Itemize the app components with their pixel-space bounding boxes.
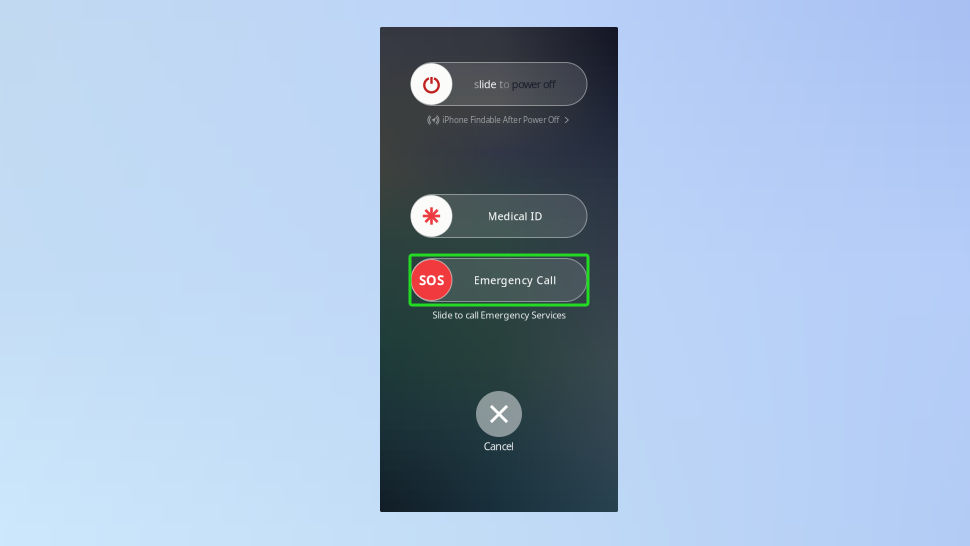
staticText: Slide to call Emergency Services	[432, 309, 565, 321]
button[interactable]: iPhone Findable After Power Off	[427, 114, 571, 126]
button[interactable]: s	[411, 62, 587, 105]
staticText: Emergency Call	[474, 273, 556, 287]
staticText: power off	[509, 77, 556, 91]
staticText: o	[503, 77, 509, 91]
staticText: Cancel	[484, 439, 514, 453]
button[interactable]: Emergency Call	[411, 258, 587, 301]
staticText: SOS	[419, 271, 444, 289]
staticText: t	[497, 77, 503, 91]
staticText: Medical ID	[487, 209, 542, 223]
button[interactable]: Cancel	[476, 391, 522, 437]
staticText: s	[474, 77, 479, 91]
button[interactable]: Medical ID	[411, 194, 587, 237]
staticText: lide	[479, 77, 496, 91]
staticText: iPhone Findable After Power Off	[442, 115, 560, 125]
